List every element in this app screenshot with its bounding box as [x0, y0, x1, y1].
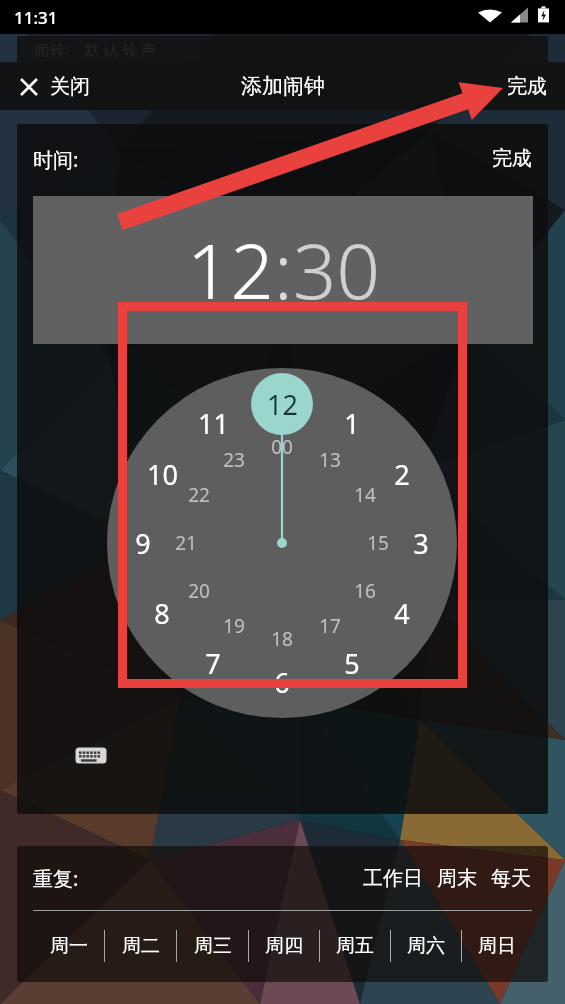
staticText: 12 [267, 386, 298, 423]
staticText: 周六 [407, 934, 445, 958]
button[interactable]: 10 [136, 454, 188, 494]
staticText: 14 [354, 482, 376, 508]
staticText: 13 [319, 447, 341, 473]
staticText: 周二 [122, 934, 160, 958]
staticText: 5 [344, 645, 360, 682]
button[interactable]: 16 [339, 571, 391, 611]
button[interactable]: 9 [117, 523, 169, 563]
staticText: 12 [187, 218, 274, 322]
staticText: 10 [147, 456, 178, 493]
button[interactable]: 3 [395, 523, 447, 563]
button[interactable]: 2 [376, 454, 428, 494]
staticText: : [274, 218, 293, 322]
button[interactable]: 17 [304, 606, 356, 646]
button[interactable]: 完成 [489, 66, 565, 107]
button[interactable]: 每天 [484, 858, 538, 899]
button[interactable]: 15 [352, 523, 404, 563]
staticText: 18 [271, 626, 293, 652]
staticText: 20 [188, 578, 210, 604]
button[interactable]: 14 [339, 475, 391, 515]
staticText: 添加闹钟 [241, 73, 325, 99]
staticText: 周末 [437, 866, 477, 891]
staticText: 周一 [50, 934, 88, 958]
staticText: 4 [394, 595, 410, 632]
button[interactable]: 13 [304, 440, 356, 480]
button[interactable]: 23 [208, 440, 260, 480]
staticText: 00 [271, 434, 293, 460]
staticText: 19 [223, 613, 245, 639]
button[interactable]: 6 [256, 662, 308, 702]
staticText: 30 [293, 218, 380, 322]
staticText: 7 [205, 645, 221, 682]
button[interactable]: 周三 [177, 911, 248, 981]
button[interactable]: 12 [33, 196, 533, 344]
button[interactable]: 关闭 [18, 74, 90, 99]
staticText: 时间: [33, 146, 79, 173]
button[interactable]: 5 [326, 643, 378, 683]
staticText: 8 [154, 595, 170, 632]
button[interactable]: 周日 [462, 911, 532, 981]
button[interactable]: 切换到键盘输入 [73, 743, 109, 768]
button[interactable]: 工作日 [356, 858, 430, 899]
staticText: 21 [175, 530, 197, 556]
staticText: 16 [354, 578, 376, 604]
button[interactable]: 11 [187, 403, 239, 443]
staticText: 15 [367, 530, 389, 556]
staticText: 11:31 [14, 6, 58, 29]
staticText: 重复: [33, 865, 79, 892]
button[interactable]: 周二 [105, 911, 176, 981]
staticText: 9 [135, 525, 151, 562]
staticText: 周三 [194, 934, 232, 958]
staticText: 6 [274, 664, 290, 701]
button[interactable]: 21 [160, 523, 212, 563]
button[interactable]: 周末 [430, 858, 484, 899]
button[interactable]: 8 [136, 593, 188, 633]
button[interactable]: 周五 [320, 911, 390, 981]
button[interactable]: 19 [208, 606, 260, 646]
staticText: 2 [394, 456, 410, 493]
staticText: 23 [223, 447, 245, 473]
button[interactable]: 4 [376, 593, 428, 633]
button[interactable]: 7 [187, 643, 239, 683]
button[interactable]: 00 [256, 427, 308, 467]
staticText: 3 [413, 525, 429, 562]
staticText: 17 [319, 613, 341, 639]
staticText: 22 [188, 482, 210, 508]
staticText: 完成 [507, 74, 547, 99]
staticText: 关闭 [50, 74, 90, 99]
staticText: 周五 [336, 934, 374, 958]
staticText: 1 [344, 405, 360, 442]
button[interactable]: 1 [326, 403, 378, 443]
staticText: 11 [198, 405, 229, 442]
button[interactable]: 周一 [33, 911, 104, 981]
staticText: 闹铃: 默 认 铃 声 [35, 39, 157, 59]
button[interactable]: 18 [256, 619, 308, 659]
staticText: 完成 [492, 146, 532, 171]
staticText: 工作日 [363, 866, 423, 891]
button[interactable]: 22 [173, 475, 225, 515]
staticText: 每天 [491, 866, 531, 891]
staticText: 周四 [265, 934, 303, 958]
button[interactable]: 周六 [391, 911, 461, 981]
button[interactable]: 完成 [476, 136, 548, 181]
button[interactable]: 12 [256, 384, 308, 424]
button[interactable]: 周四 [249, 911, 319, 981]
staticText: 周日 [478, 934, 516, 958]
button[interactable]: 20 [173, 571, 225, 611]
